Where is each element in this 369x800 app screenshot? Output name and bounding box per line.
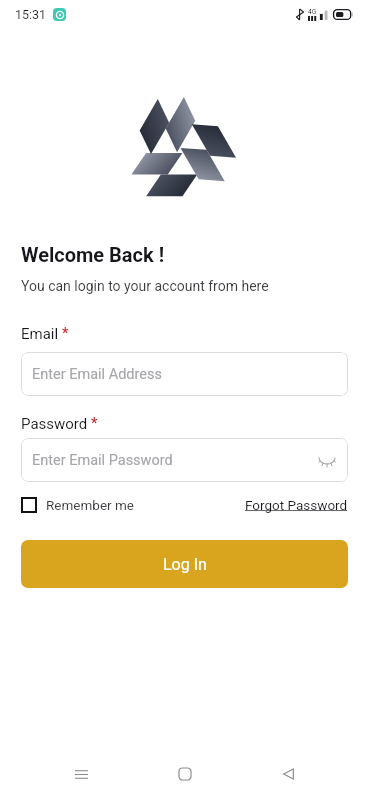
button[interactable]: Enter Email Address	[21, 352, 348, 396]
staticText: Enter Email Address	[32, 366, 162, 383]
button[interactable]: Remember me	[21, 497, 134, 513]
button[interactable]: Enter Email Password	[21, 438, 348, 482]
button[interactable]: Home	[163, 752, 207, 796]
button[interactable]: Back	[266, 752, 310, 796]
staticText: 4G	[308, 8, 317, 16]
staticText: Remember me	[46, 497, 134, 513]
staticText: Welcome Back !	[21, 243, 165, 266]
staticText: Log In	[163, 555, 207, 574]
staticText: *	[62, 325, 69, 341]
staticText: Password	[21, 415, 88, 433]
button[interactable]: Forgot Password	[245, 497, 348, 513]
staticText: Email	[21, 325, 59, 343]
other: Show password	[317, 450, 337, 470]
button[interactable]: Log In	[21, 540, 348, 588]
button[interactable]: Recent apps	[59, 752, 103, 796]
staticText: You can login to your account from here	[21, 278, 269, 294]
staticText: 15:31	[15, 7, 47, 22]
staticText: *	[91, 415, 98, 431]
staticText: Enter Email Password	[32, 452, 173, 469]
